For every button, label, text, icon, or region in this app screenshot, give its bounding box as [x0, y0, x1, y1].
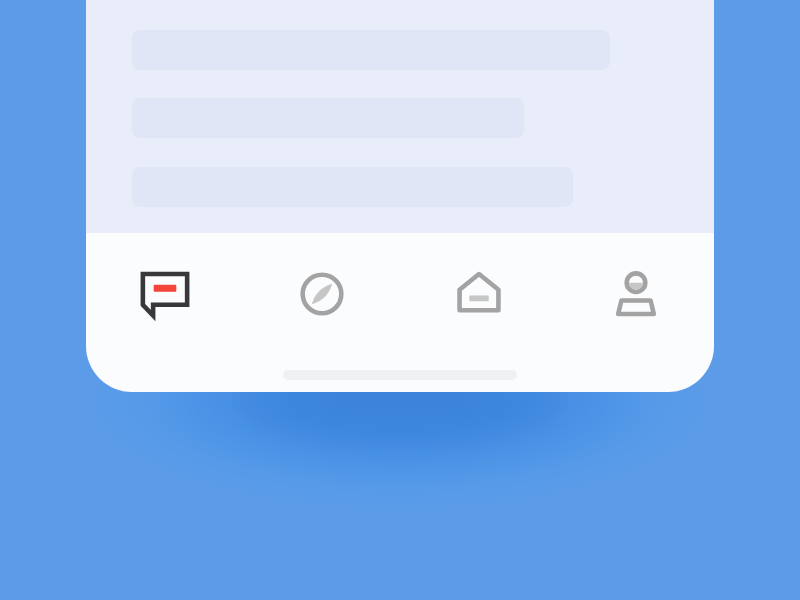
button[interactable]: Explore — [243, 241, 400, 347]
button[interactable]: Profile — [557, 241, 714, 347]
button[interactable]: Messages — [86, 241, 243, 347]
button[interactable]: Home — [400, 241, 557, 347]
